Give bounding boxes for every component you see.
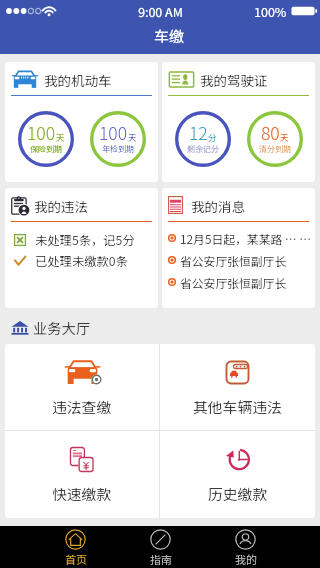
staticText: 我的机动车 xyxy=(44,70,112,90)
staticText: 剩余记分 xyxy=(187,143,219,155)
staticText: 快速缴款 xyxy=(52,483,112,504)
staticText: 违法查缴 xyxy=(52,396,112,417)
button[interactable]: Profile xyxy=(203,526,288,568)
staticText: 清分到期 xyxy=(259,143,291,155)
staticText: 12 xyxy=(189,120,208,145)
staticText: 分 xyxy=(208,131,217,143)
staticText: 100 xyxy=(27,120,56,145)
button[interactable]: 快速缴款 xyxy=(5,431,159,518)
button[interactable]: 省公安厅张恒副厅长 xyxy=(168,249,315,271)
staticText: 年检到期 xyxy=(102,143,134,155)
button[interactable]: 历史缴款 xyxy=(160,431,315,518)
staticText: 80 xyxy=(261,120,280,145)
staticText: 已处理未缴款0条 xyxy=(35,252,128,270)
button[interactable]: 我的驾驶证 xyxy=(162,62,315,182)
staticText: 100 xyxy=(99,120,128,145)
staticText: 天 xyxy=(56,131,65,143)
staticText: 省公安厅张恒副厅长 xyxy=(180,252,287,269)
staticText: 省公安厅张恒副厅长 xyxy=(180,274,287,291)
button[interactable]: Home xyxy=(33,526,118,568)
staticText: 历史缴款 xyxy=(208,483,268,504)
staticText: 首页 xyxy=(65,551,87,567)
button[interactable]: Guide xyxy=(118,526,203,568)
staticText: 天 xyxy=(280,131,289,143)
staticText: 指南 xyxy=(150,551,172,567)
staticText: 车缴 xyxy=(154,25,185,47)
button[interactable]: 我的机动车 xyxy=(5,62,158,182)
button[interactable]: 我的违法 xyxy=(5,188,158,308)
staticText: 12月5日起，某某路 … … xyxy=(180,230,312,247)
button[interactable]: 其他车辆违法 xyxy=(160,344,315,430)
button[interactable]: 违法查缴 xyxy=(5,344,159,430)
button[interactable]: 12月5日起，某某路 … … xyxy=(168,227,315,249)
button[interactable]: 业务大厅 xyxy=(11,316,91,338)
staticText: 我的违法 xyxy=(34,196,88,216)
staticText: 其他车辆违法 xyxy=(193,396,282,417)
staticText: 保险到期 xyxy=(30,143,62,155)
staticText: 天 xyxy=(128,131,137,143)
staticText: 未处理5条，记5分 xyxy=(35,231,135,249)
button[interactable]: 省公安厅张恒副厅长 xyxy=(168,271,315,293)
staticText: 业务大厅 xyxy=(33,317,91,338)
button[interactable]: 我的消息 xyxy=(162,188,315,308)
staticText: 我的消息 xyxy=(191,196,245,216)
staticText: 我的驾驶证 xyxy=(200,70,268,90)
staticText: 9:00 AM xyxy=(138,2,183,20)
staticText: 100% xyxy=(254,2,287,20)
staticText: 我的 xyxy=(235,551,257,567)
